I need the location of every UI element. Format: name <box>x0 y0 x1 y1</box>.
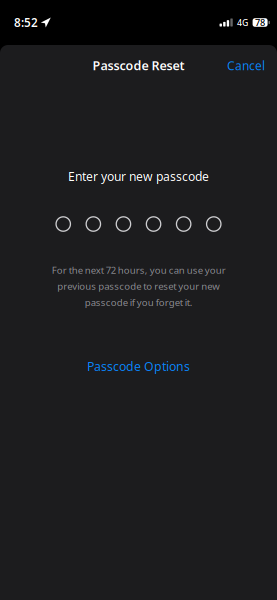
staticText: Passcode Reset <box>92 57 184 74</box>
staticText: Passcode Options <box>87 358 190 375</box>
staticText: 8:52 <box>14 14 38 30</box>
button[interactable]: Cancel <box>222 51 270 80</box>
staticText: For the next 72 hours, you can use your … <box>51 263 225 309</box>
staticText: 78 <box>255 16 265 29</box>
staticText: 4G <box>237 16 248 28</box>
staticText: Enter your new passcode <box>68 168 209 184</box>
staticText: Cancel <box>227 57 265 74</box>
button[interactable]: Passcode Options <box>79 353 198 380</box>
